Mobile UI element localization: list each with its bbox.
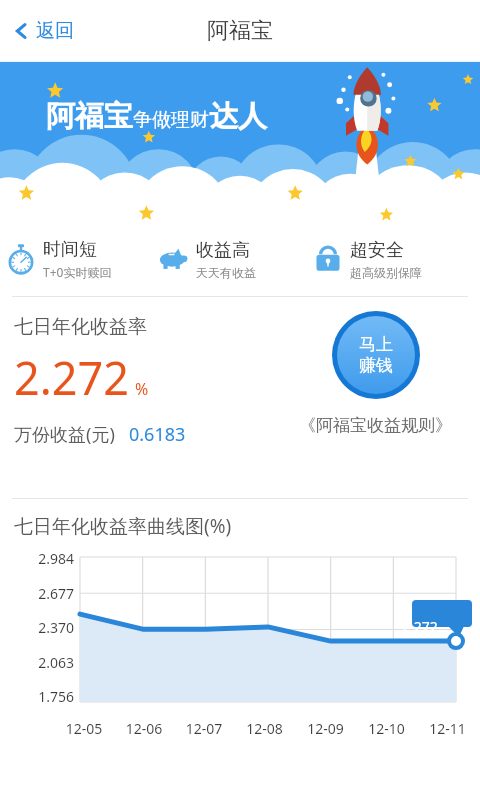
staticText: 12-08: [234, 719, 295, 738]
staticText: 时间短: [43, 238, 97, 261]
staticText: 2.677: [38, 584, 74, 603]
staticText: 七日年化收益率: [14, 315, 147, 339]
staticText: 12-06: [114, 719, 174, 738]
staticText: 达人: [209, 98, 267, 135]
staticText: 12-09: [295, 719, 356, 738]
staticText: 天天有收益: [196, 265, 256, 280]
button[interactable]: 《阿福宝收益规则》: [299, 415, 452, 436]
button[interactable]: 收益高: [158, 222, 312, 296]
staticText: 2.272: [402, 617, 438, 636]
button[interactable]: 返回: [6, 11, 82, 51]
staticText: 返回: [36, 19, 74, 43]
staticText: 12-05: [54, 719, 114, 738]
staticText: 超安全: [350, 239, 404, 262]
staticText: 争做理财: [133, 108, 209, 132]
staticText: 12-10: [356, 719, 417, 738]
staticText: 12-07: [174, 719, 234, 738]
staticText: 超高级别保障: [350, 265, 422, 280]
button[interactable]: 超安全: [312, 222, 475, 296]
staticText: 2.984: [38, 549, 74, 568]
button[interactable]: 马上: [332, 311, 420, 399]
button[interactable]: 时间短: [5, 222, 158, 296]
staticText: 1.756: [38, 687, 74, 706]
staticText: T+0实时赎回: [43, 264, 112, 280]
staticText: 2.370: [38, 618, 74, 637]
staticText: 七日年化收益率曲线图(%): [14, 513, 232, 539]
staticText: 阿福宝: [207, 17, 273, 45]
staticText: 2.063: [38, 653, 74, 672]
staticText: 赚钱: [359, 355, 393, 376]
staticText: 12-11: [417, 719, 478, 738]
staticText: %: [135, 378, 149, 400]
staticText: 2.272: [14, 347, 130, 408]
staticText: 收益高: [196, 239, 250, 262]
staticText: 马上: [359, 334, 393, 355]
staticText: 阿福宝: [46, 98, 133, 135]
staticText: 万份收益(元): [14, 422, 115, 447]
staticText: 0.6183: [129, 422, 186, 447]
